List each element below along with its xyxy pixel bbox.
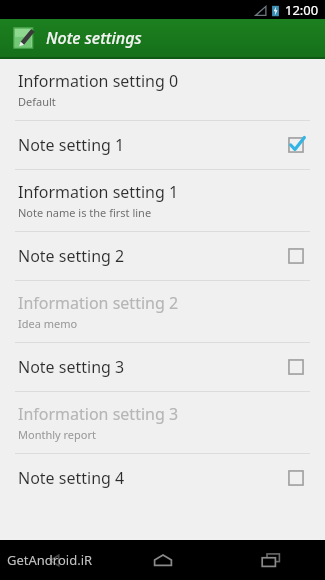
staticText: Idea memo [18,316,78,331]
staticText: Note setting 4 [18,467,285,489]
staticText: 12:00 [285,1,319,19]
staticText: Information setting 2 [18,292,179,314]
button[interactable]: Back [0,540,109,580]
staticText: Note setting 3 [18,356,285,378]
button[interactable]: Information setting 0 [0,59,325,120]
button[interactable]: Information setting 2 [0,281,325,342]
button[interactable]: Note setting 4 [0,454,325,502]
staticText: Information setting 1 [18,181,179,203]
staticText: Note name is the first line [18,205,152,220]
button[interactable]: Note setting 3 [0,343,325,391]
other: Unchecked [285,467,307,489]
staticText: Note setting 2 [18,245,285,267]
button[interactable]: Information setting 3 [0,392,325,453]
button[interactable]: Home [109,540,217,580]
staticText: Default [18,94,56,109]
button[interactable]: Recent apps [217,540,325,580]
staticText: GetAndroid.iR [7,551,93,569]
button[interactable]: Note setting 1 [0,121,325,169]
other: Unchecked [285,245,307,267]
staticText: Monthly report [18,427,96,442]
staticText: Note settings [46,27,142,49]
other: Unchecked [285,356,307,378]
staticText: Note setting 1 [18,134,285,156]
staticText: Information setting 3 [18,403,179,425]
other: Checked [285,134,307,156]
button[interactable]: Note setting 2 [0,232,325,280]
staticText: Information setting 0 [18,70,179,92]
button[interactable]: Information setting 1 [0,170,325,231]
